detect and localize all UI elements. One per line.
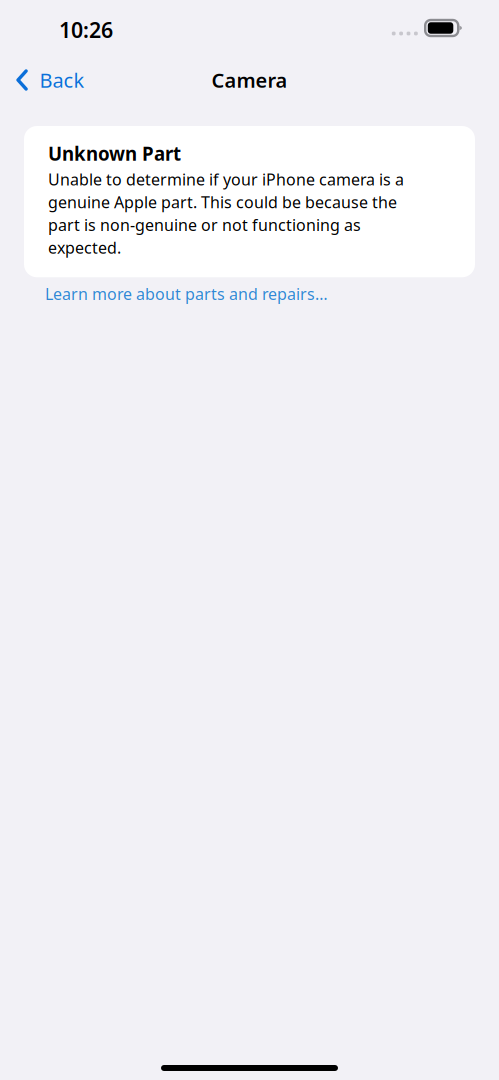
button[interactable]: Learn more about parts and repairs… bbox=[0, 277, 499, 312]
button[interactable]: Back bbox=[0, 58, 96, 102]
staticText: 10:26 bbox=[59, 16, 113, 44]
staticText: Unknown Part bbox=[48, 141, 181, 166]
staticText: Back bbox=[39, 67, 84, 93]
staticText: Camera bbox=[211, 67, 287, 93]
staticText: Unable to determine if your iPhone camer… bbox=[48, 169, 404, 258]
staticText: Learn more about parts and repairs… bbox=[45, 283, 328, 304]
